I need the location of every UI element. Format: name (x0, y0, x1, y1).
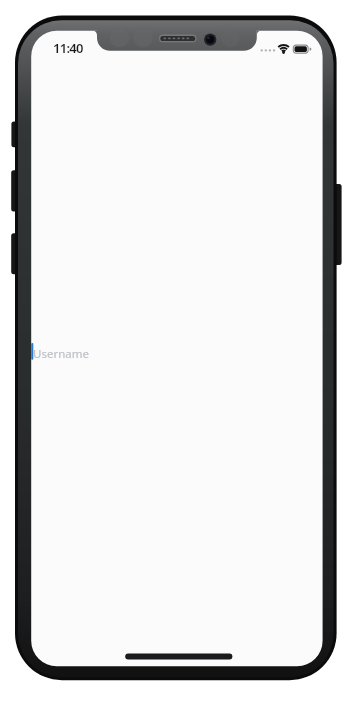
button[interactable]: Username (31, 337, 322, 366)
staticText: Username (33, 346, 89, 362)
staticText: 11:40 (53, 39, 83, 57)
